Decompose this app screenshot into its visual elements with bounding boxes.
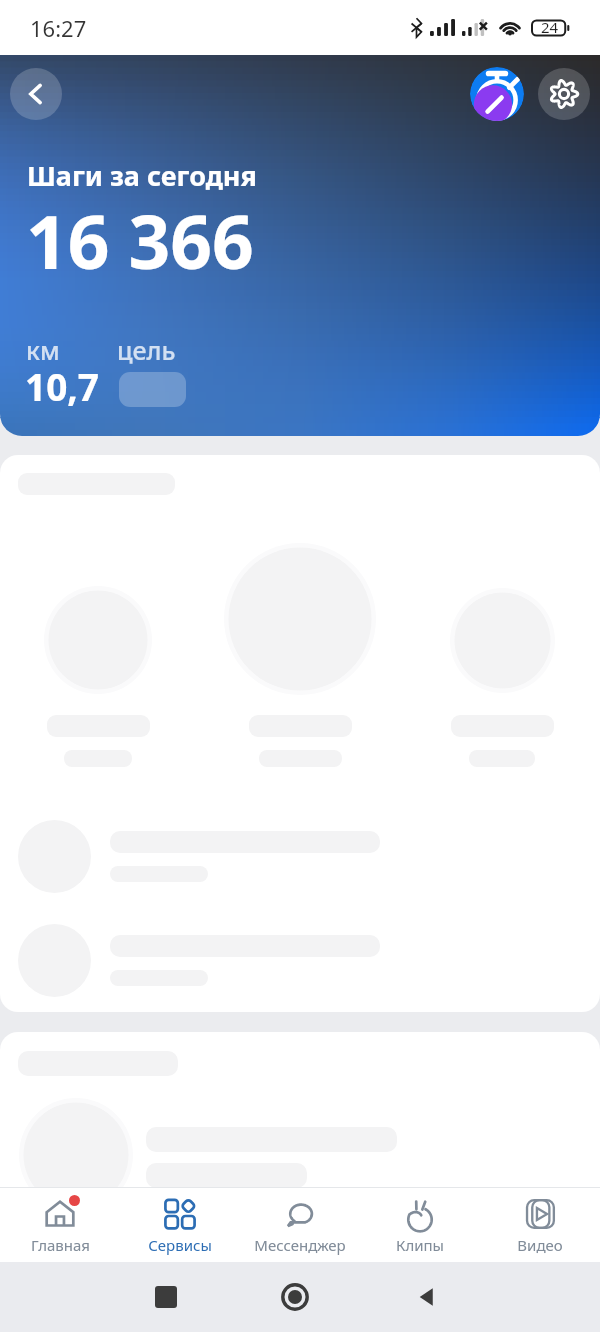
button[interactable]: Видео — [480, 1188, 600, 1262]
staticText: Видео — [517, 1235, 563, 1255]
button[interactable]: Клипы — [360, 1188, 480, 1262]
staticText: 16 366 — [26, 191, 254, 290]
button[interactable]: Recents — [155, 1286, 177, 1308]
button[interactable]: Back — [414, 1284, 440, 1310]
staticText: Сервисы — [148, 1235, 212, 1255]
staticText: Главная — [31, 1235, 90, 1255]
staticText: 16:27 — [30, 13, 87, 43]
button[interactable] — [18, 923, 600, 997]
staticText: 10,7 — [25, 361, 100, 411]
button[interactable]: Back — [10, 68, 62, 120]
staticText: км — [26, 333, 60, 367]
staticText: Мессенджер — [254, 1235, 346, 1255]
button[interactable]: Stopwatch — [470, 67, 524, 121]
button[interactable]: Главная — [0, 1188, 120, 1262]
staticText: Шаги за сегодня — [27, 157, 257, 194]
staticText: цель — [117, 333, 176, 367]
button[interactable] — [224, 543, 376, 695]
button[interactable]: Settings — [538, 68, 590, 120]
staticText: 24 — [541, 17, 559, 37]
button[interactable]: Home — [281, 1283, 309, 1311]
button[interactable]: Сервисы — [120, 1188, 240, 1262]
button[interactable] — [44, 586, 152, 694]
button[interactable] — [18, 819, 600, 893]
button[interactable]: Мессенджер — [240, 1188, 360, 1262]
staticText: Клипы — [396, 1235, 444, 1255]
button[interactable] — [450, 588, 555, 693]
